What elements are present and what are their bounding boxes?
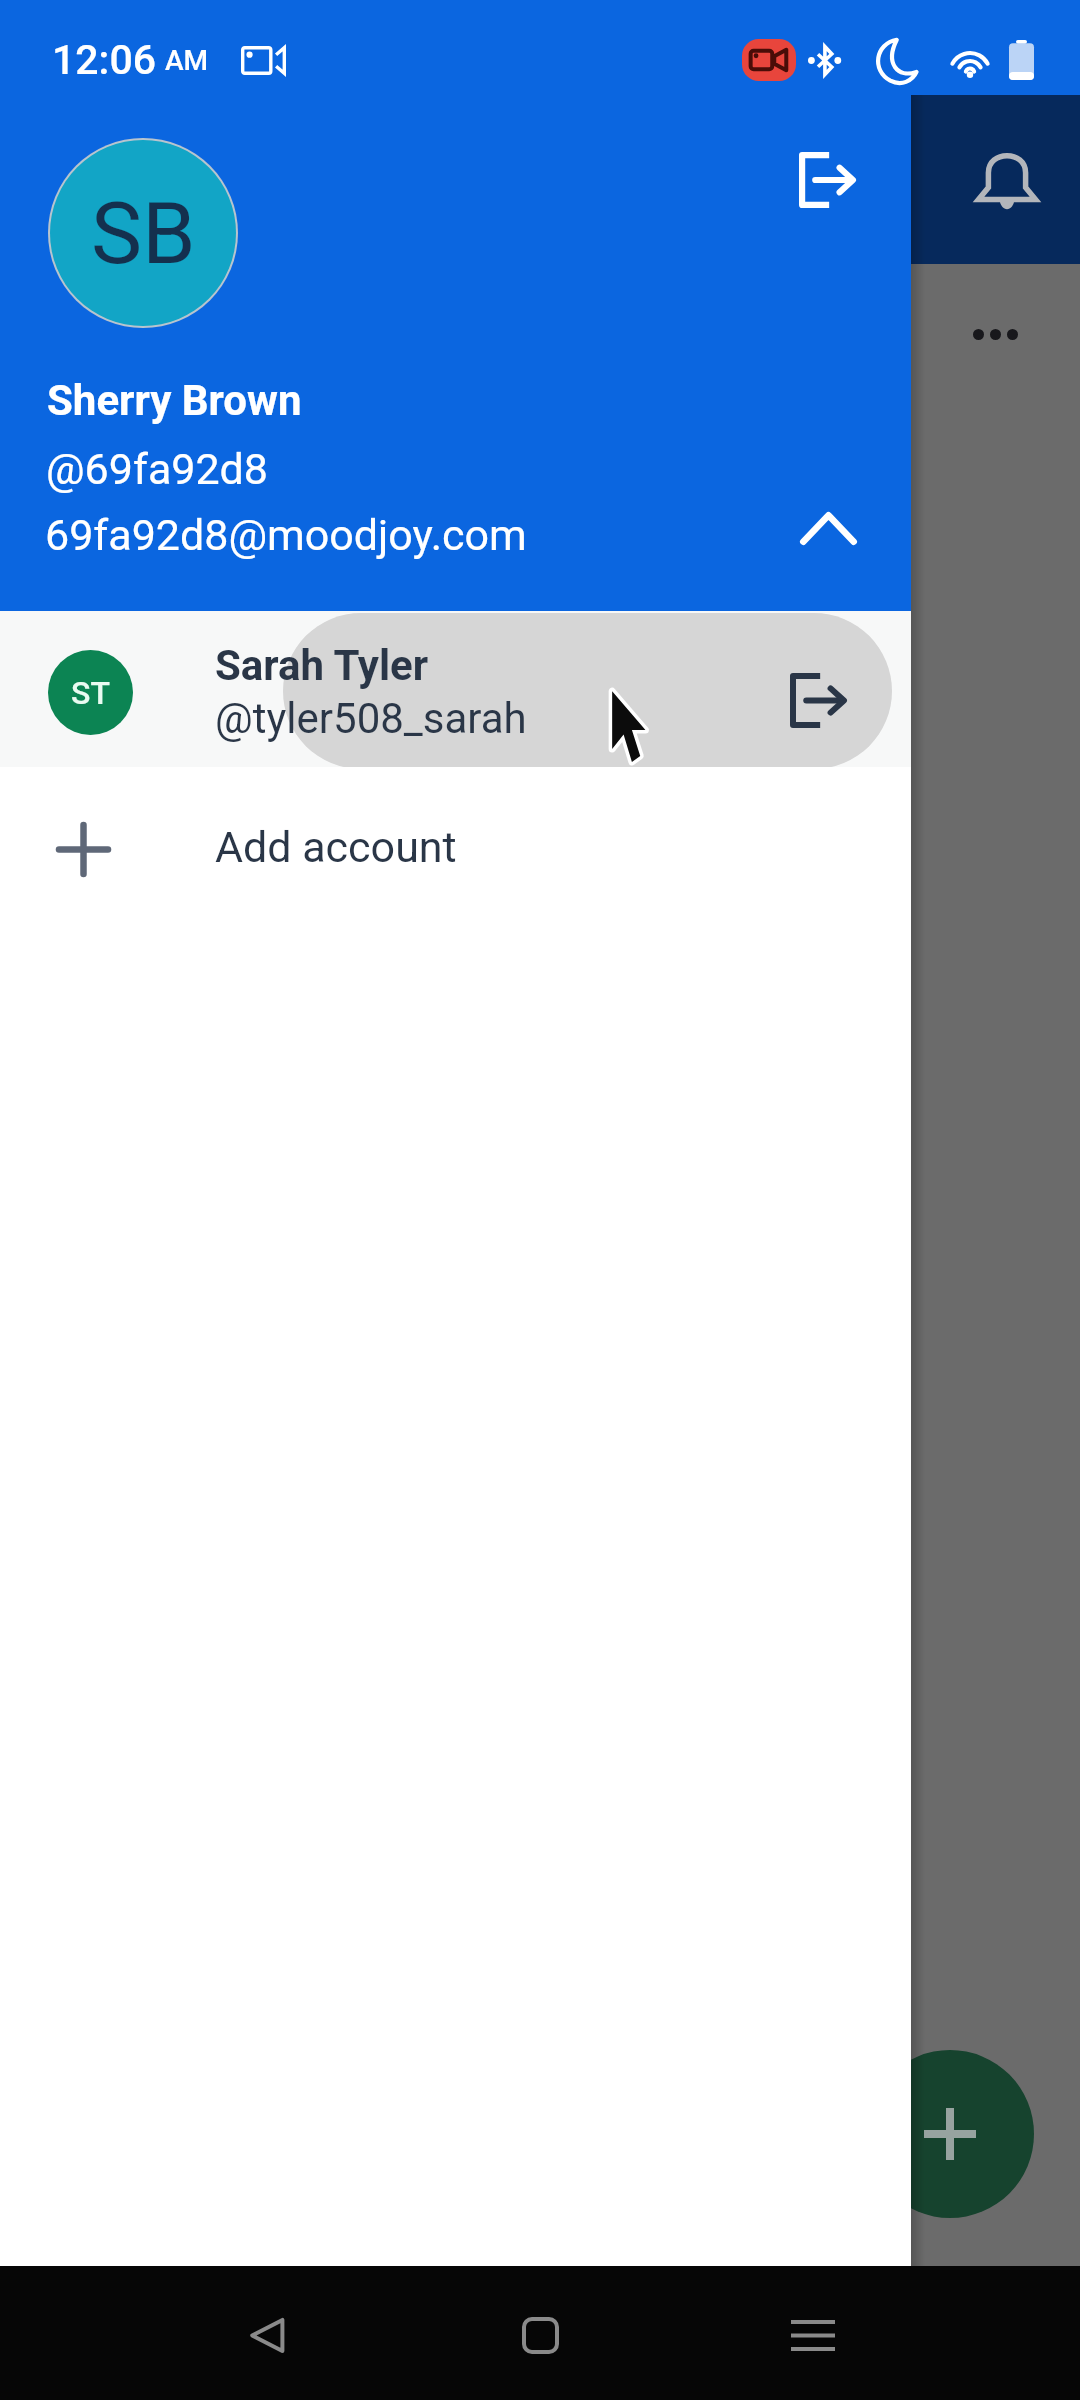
staticText: @69fa92d8 xyxy=(46,444,269,494)
button[interactable]: Recents xyxy=(757,2279,869,2391)
staticText: ST xyxy=(71,674,110,712)
staticText: 69fa92d8@moodjoy.com xyxy=(45,510,527,560)
button[interactable]: Notifications xyxy=(963,136,1050,223)
staticText: 12:06 xyxy=(52,36,157,84)
staticText: SB xyxy=(91,183,196,284)
button[interactable]: Add account xyxy=(0,767,911,925)
staticText: Add account xyxy=(215,822,457,872)
button[interactable]: SB xyxy=(50,140,236,326)
button[interactable]: Back xyxy=(212,2279,324,2391)
button[interactable]: More options xyxy=(952,291,1039,378)
button[interactable]: Home xyxy=(484,2279,596,2391)
button[interactable]: Sign out xyxy=(762,114,894,246)
button[interactable]: Sign out of Sarah Tyler xyxy=(759,640,879,760)
staticText: @tyler508_sarah xyxy=(215,694,527,743)
button[interactable]: Collapse accounts xyxy=(762,462,894,594)
button[interactable]: Add xyxy=(866,2050,1034,2218)
button[interactable]: ST xyxy=(0,611,911,767)
staticText: Sherry Brown xyxy=(47,376,302,425)
staticText: Sarah Tyler xyxy=(215,641,429,690)
staticText: AM xyxy=(165,44,209,77)
